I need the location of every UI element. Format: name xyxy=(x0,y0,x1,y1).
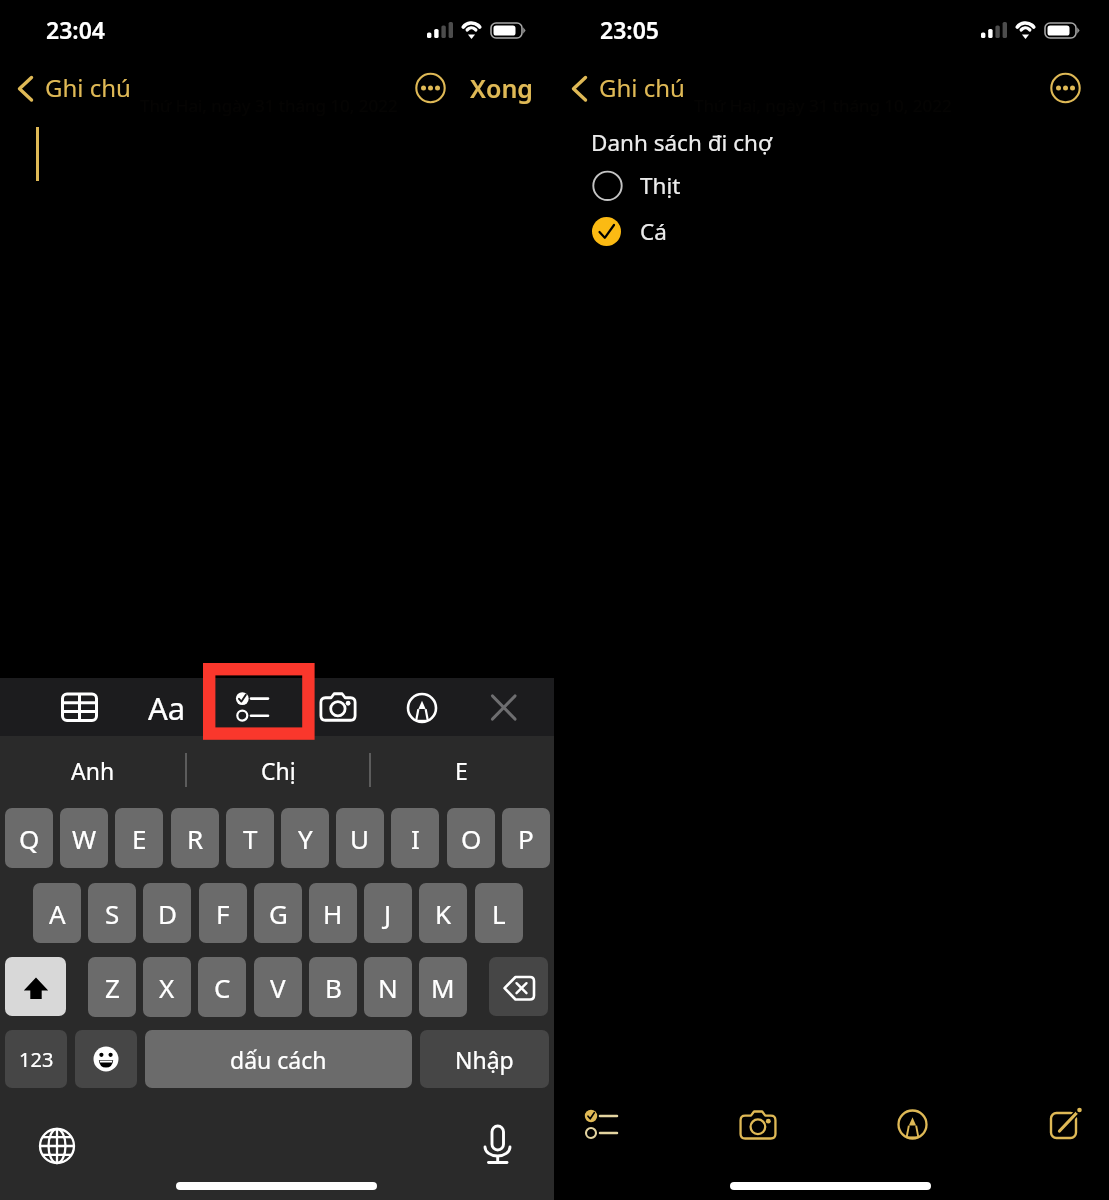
staticText: A xyxy=(49,896,66,931)
staticText: Ghi chú xyxy=(45,71,131,104)
button[interactable]: Checklist xyxy=(234,685,278,729)
staticText: T xyxy=(243,821,258,856)
button[interactable]: Camera xyxy=(313,685,363,729)
staticText: D xyxy=(158,896,177,931)
staticText: 23:04 xyxy=(46,14,105,45)
staticText: Anh xyxy=(71,755,115,786)
staticText: dấu cách xyxy=(230,1044,327,1075)
button[interactable]: M xyxy=(419,957,467,1017)
staticText: B xyxy=(325,970,342,1005)
button[interactable]: Y xyxy=(281,808,329,868)
button[interactable]: dấu cách xyxy=(145,1030,412,1088)
staticText: Cá xyxy=(640,216,667,247)
staticText: S xyxy=(105,896,120,931)
button[interactable]: V xyxy=(254,957,302,1017)
staticText: Y xyxy=(298,821,313,856)
staticText: Aa xyxy=(148,687,186,729)
staticText: L xyxy=(492,896,506,931)
button[interactable]: L xyxy=(475,883,523,943)
button[interactable]: G xyxy=(254,883,302,943)
button[interactable]: C xyxy=(198,957,246,1017)
staticText: N xyxy=(378,970,398,1005)
button[interactable]: A xyxy=(33,883,81,943)
staticText: U xyxy=(350,821,370,856)
button[interactable]: R xyxy=(171,808,219,868)
button[interactable]: Dictation xyxy=(476,1120,520,1164)
button[interactable]: Language xyxy=(35,1124,79,1168)
staticText: O xyxy=(461,821,482,856)
button[interactable]: U xyxy=(336,808,384,868)
button[interactable]: Z xyxy=(88,957,136,1017)
button[interactable]: More xyxy=(1047,70,1084,107)
button[interactable]: F xyxy=(199,883,247,943)
button[interactable]: Aa xyxy=(148,687,186,729)
staticText: K xyxy=(435,896,452,931)
button[interactable]: Markup xyxy=(404,690,440,726)
button[interactable]: Q xyxy=(5,808,53,868)
staticText: Q xyxy=(19,821,40,856)
button[interactable]: T xyxy=(226,808,274,868)
staticText: Chị xyxy=(261,755,296,786)
button[interactable]: Checklist xyxy=(570,1100,634,1150)
button[interactable]: Xong xyxy=(470,71,533,105)
staticText: I xyxy=(411,821,420,856)
staticText: C xyxy=(214,970,231,1005)
button[interactable]: Markup xyxy=(890,1102,935,1147)
staticText: R xyxy=(187,821,204,856)
button[interactable]: Nhập xyxy=(420,1030,549,1088)
staticText: E xyxy=(455,755,468,786)
button[interactable]: Emoji xyxy=(75,1030,137,1088)
button[interactable]: N xyxy=(364,957,412,1017)
button[interactable]: B xyxy=(309,957,357,1017)
button[interactable]: 123 xyxy=(5,1030,67,1088)
staticText: Danh sách đi chợ xyxy=(591,127,772,158)
button[interactable]: K xyxy=(419,883,467,943)
button[interactable]: E xyxy=(115,808,163,868)
staticText: X xyxy=(159,970,175,1005)
staticText: H xyxy=(323,896,343,931)
button[interactable]: Close xyxy=(486,690,522,726)
button[interactable]: New note xyxy=(1038,1100,1084,1150)
button[interactable]: Backspace xyxy=(489,957,548,1016)
staticText: M xyxy=(431,970,455,1005)
staticText: F xyxy=(216,896,230,931)
button[interactable]: J xyxy=(364,883,412,943)
button[interactable]: X xyxy=(143,957,191,1017)
staticText: W xyxy=(72,821,97,856)
staticText: E xyxy=(132,821,147,856)
staticText: Z xyxy=(105,970,120,1005)
button[interactable]: Back to Ghi chú xyxy=(562,66,712,112)
staticText: Ghi chú xyxy=(599,71,685,104)
button[interactable]: Table xyxy=(56,688,102,726)
staticText: Thịt xyxy=(640,170,681,201)
button[interactable]: D xyxy=(143,883,191,943)
staticText: Nhập xyxy=(455,1044,514,1075)
button[interactable]: Back to Ghi chú xyxy=(8,66,158,112)
button[interactable]: Shift xyxy=(5,957,66,1016)
staticText: Xong xyxy=(470,71,533,105)
button[interactable]: S xyxy=(88,883,136,943)
button[interactable]: I xyxy=(391,808,439,868)
staticText: G xyxy=(269,896,288,931)
button[interactable]: Cá xyxy=(588,212,768,252)
button[interactable]: Camera xyxy=(733,1102,783,1148)
staticText: J xyxy=(384,896,392,931)
button[interactable]: P xyxy=(502,808,550,868)
button[interactable]: Thịt xyxy=(588,166,768,206)
staticText: P xyxy=(518,821,534,856)
staticText: 23:05 xyxy=(600,14,659,45)
staticText: 123 xyxy=(19,1046,54,1073)
button[interactable]: W xyxy=(60,808,108,868)
button[interactable]: More xyxy=(412,70,449,107)
staticText: V xyxy=(270,970,286,1005)
button[interactable]: H xyxy=(309,883,357,943)
button[interactable]: O xyxy=(447,808,495,868)
